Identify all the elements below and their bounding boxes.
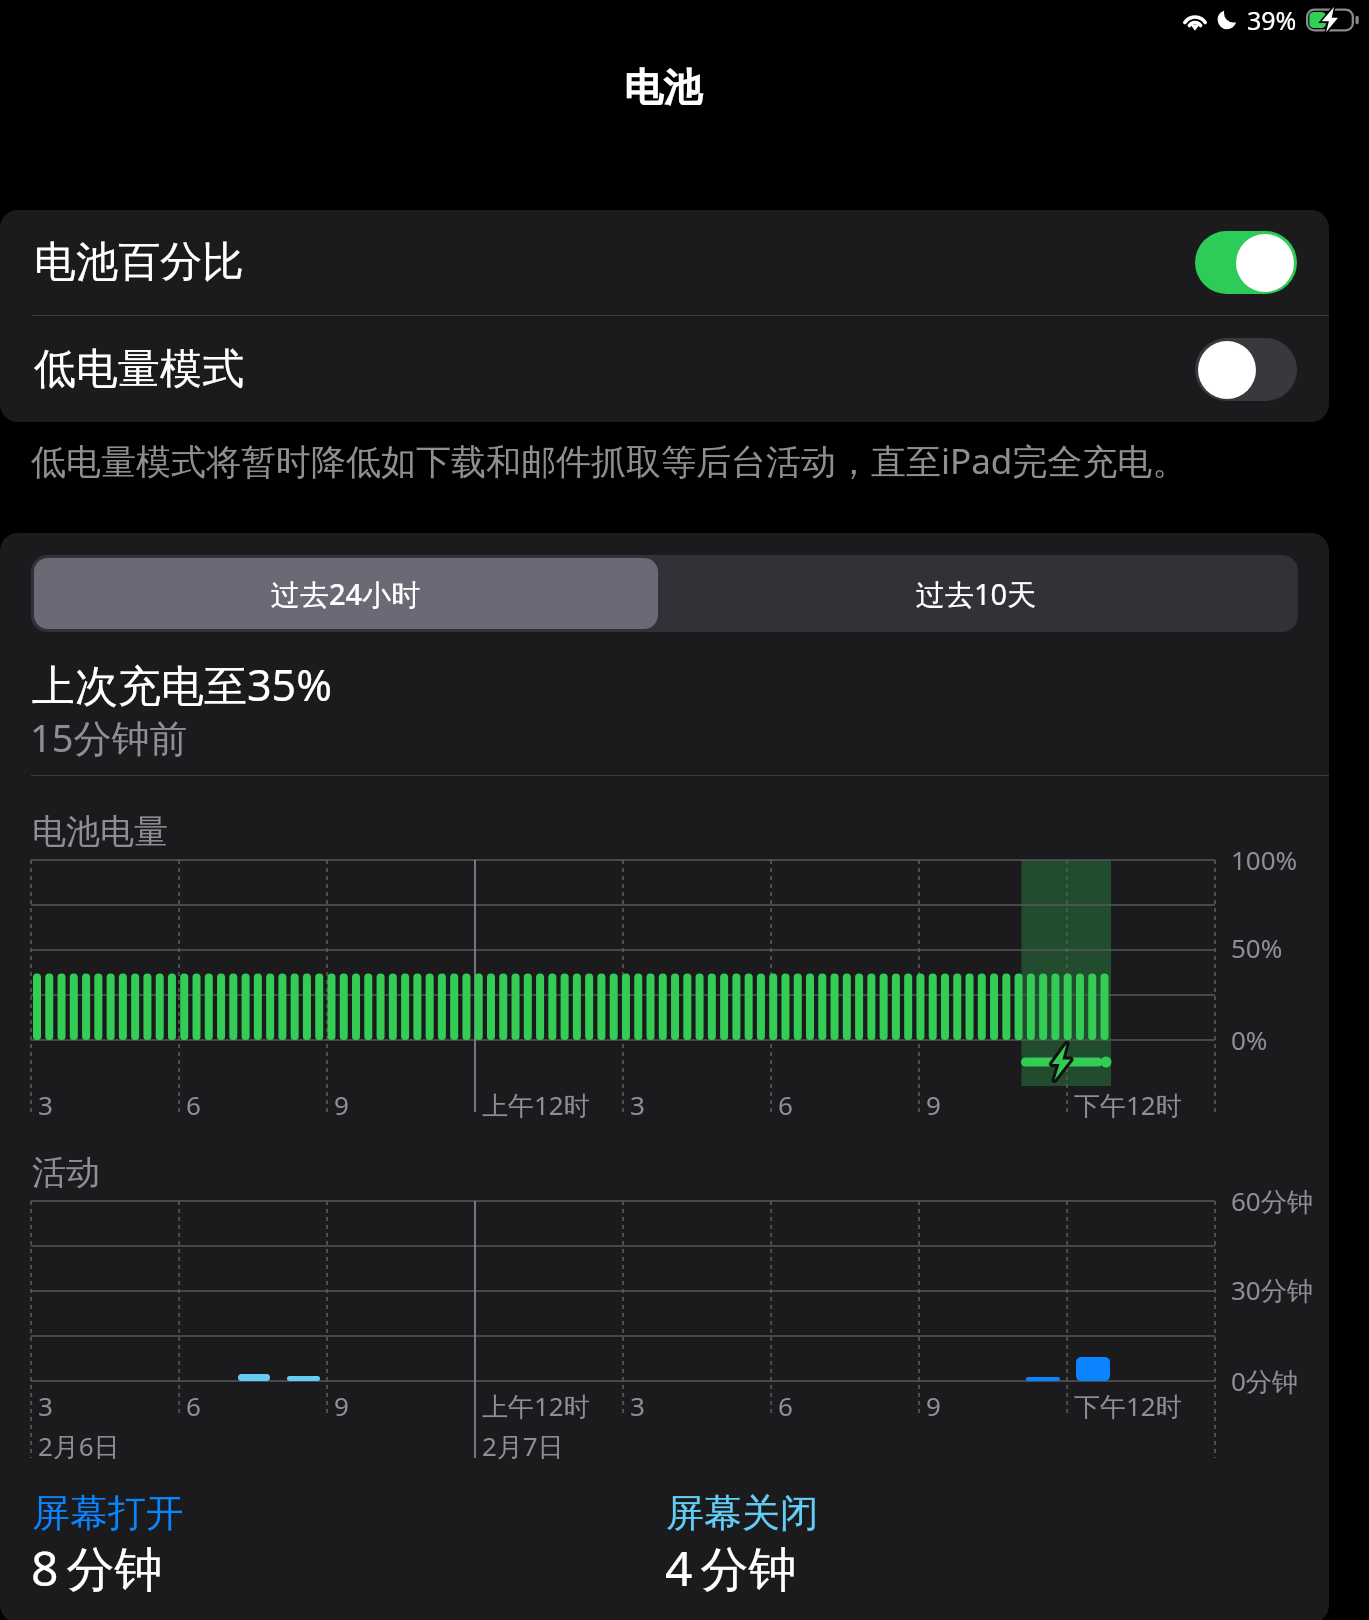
staticText: 9 bbox=[926, 1388, 941, 1423]
staticText: 低电量模式将暂时降低如下载和邮件抓取等后台活动，直至iPad完全充电。 bbox=[31, 437, 1188, 485]
staticText: 电池电量 bbox=[32, 810, 168, 853]
other: Do Not Disturb bbox=[1215, 8, 1239, 32]
staticText: 2月7日 bbox=[482, 1428, 564, 1464]
button[interactable]: 过去10天 bbox=[658, 558, 1295, 629]
staticText: 6 bbox=[778, 1087, 793, 1122]
staticText: 3 bbox=[38, 1388, 53, 1423]
staticText: 下午12时 bbox=[1074, 1388, 1182, 1424]
staticText: 4 分钟 bbox=[665, 1535, 797, 1601]
staticText: 屏幕打开 bbox=[32, 1489, 184, 1537]
staticText: 6 bbox=[186, 1087, 201, 1122]
staticText: 15分钟前 bbox=[30, 711, 188, 763]
staticText: 3 bbox=[630, 1388, 645, 1423]
staticText: 活动 bbox=[32, 1151, 100, 1194]
staticText: 100% bbox=[1231, 842, 1298, 877]
staticText: 上午12时 bbox=[482, 1388, 590, 1424]
button[interactable]: 电池百分比 bbox=[0, 210, 1329, 315]
staticText: 过去10天 bbox=[916, 574, 1037, 614]
staticText: 3 bbox=[630, 1087, 645, 1122]
staticText: 低电量模式 bbox=[34, 343, 244, 396]
staticText: 8 分钟 bbox=[31, 1535, 163, 1601]
button[interactable]: 低电量模式 bbox=[0, 316, 1329, 422]
staticText: 0% bbox=[1231, 1022, 1268, 1057]
staticText: 39% bbox=[1247, 3, 1297, 37]
staticText: 0分钟 bbox=[1231, 1363, 1298, 1399]
staticText: 9 bbox=[926, 1087, 941, 1122]
other: Wi-Fi bbox=[1180, 5, 1210, 32]
staticText: 过去24小时 bbox=[271, 574, 421, 614]
staticText: 9 bbox=[334, 1087, 349, 1122]
button[interactable]: 过去24小时 bbox=[34, 558, 658, 629]
staticText: 60分钟 bbox=[1231, 1183, 1313, 1219]
staticText: 2月6日 bbox=[38, 1428, 120, 1464]
staticText: 电池 bbox=[624, 63, 702, 112]
staticText: 上次充电至35% bbox=[32, 655, 332, 714]
staticText: 9 bbox=[334, 1388, 349, 1423]
other: Battery charging bbox=[1306, 7, 1362, 33]
staticText: 3 bbox=[38, 1087, 53, 1122]
staticText: 上午12时 bbox=[482, 1087, 590, 1123]
staticText: 电池百分比 bbox=[34, 236, 244, 289]
staticText: 30分钟 bbox=[1231, 1272, 1313, 1308]
staticText: 下午12时 bbox=[1074, 1087, 1182, 1123]
staticText: 屏幕关闭 bbox=[666, 1489, 818, 1537]
staticText: 50% bbox=[1231, 930, 1283, 965]
staticText: 6 bbox=[778, 1388, 793, 1423]
staticText: 6 bbox=[186, 1388, 201, 1423]
